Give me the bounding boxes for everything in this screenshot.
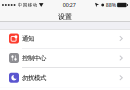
button[interactable]: 勿扰模式: [0, 68, 130, 87]
staticText: 控制中心: [22, 54, 46, 62]
staticText: 00:27: [63, 1, 76, 9]
button[interactable]: 通知: [0, 29, 130, 48]
staticText: 88%: [106, 1, 116, 9]
staticText: 设置: [58, 12, 72, 21]
staticText: 中国移动: [18, 2, 38, 8]
staticText: 勿扰模式: [22, 74, 46, 82]
staticText: 通知: [22, 34, 34, 43]
button[interactable]: 控制中心: [0, 48, 130, 68]
